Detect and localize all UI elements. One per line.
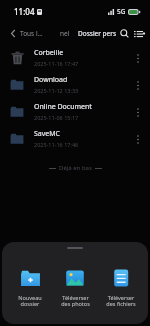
button[interactable]: Options du fichier (131, 78, 145, 92)
staticText: 2025-11-12 13:33 (34, 87, 79, 94)
staticText: 5G (117, 7, 126, 16)
staticText: Nouveau dossier (18, 294, 42, 308)
staticText: Corbeille (34, 48, 64, 58)
button[interactable]: Retour (6, 26, 20, 40)
button[interactable]: Téléverser des fichiers (99, 264, 143, 310)
button[interactable]: Corbeille (0, 44, 150, 71)
staticText: Dossier pers (78, 29, 117, 38)
button[interactable]: Options du fichier (131, 105, 145, 119)
staticText: Tous l… (20, 29, 43, 38)
staticText: 2025-11-16 17:46 (34, 141, 79, 148)
button[interactable]: Téléverser des photos (53, 264, 97, 310)
button[interactable]: Online Document (0, 98, 150, 125)
staticText: Online Document (34, 102, 92, 112)
button[interactable]: Options du fichier (131, 132, 145, 146)
button[interactable]: Options du fichier (131, 51, 145, 65)
staticText: nel (60, 29, 70, 38)
staticText: 2025-11-06 15:17 (34, 114, 79, 121)
button[interactable]: Nouveau dossier (8, 264, 52, 310)
staticText: Téléverser des fichiers (106, 294, 136, 308)
button[interactable]: SaveMC (0, 125, 150, 152)
button[interactable]: Dossier pers (78, 29, 117, 38)
staticText: 2025-11-16 17:47 (34, 60, 79, 67)
staticText: Déjà en bas (59, 164, 92, 172)
staticText: Téléverser des photos (61, 294, 90, 308)
staticText: Download (34, 75, 68, 85)
button[interactable]: Rechercher (117, 26, 132, 41)
staticText: SaveMC (34, 129, 61, 139)
staticText: 11:04 (14, 6, 35, 17)
button[interactable]: Download (0, 71, 150, 98)
button[interactable]: Tous l… (20, 29, 43, 38)
button[interactable]: Affichage liste (132, 26, 144, 41)
